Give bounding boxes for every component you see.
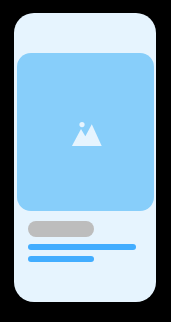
button[interactable]: Image placeholder — [17, 53, 154, 211]
other: Image placeholder — [72, 119, 104, 147]
